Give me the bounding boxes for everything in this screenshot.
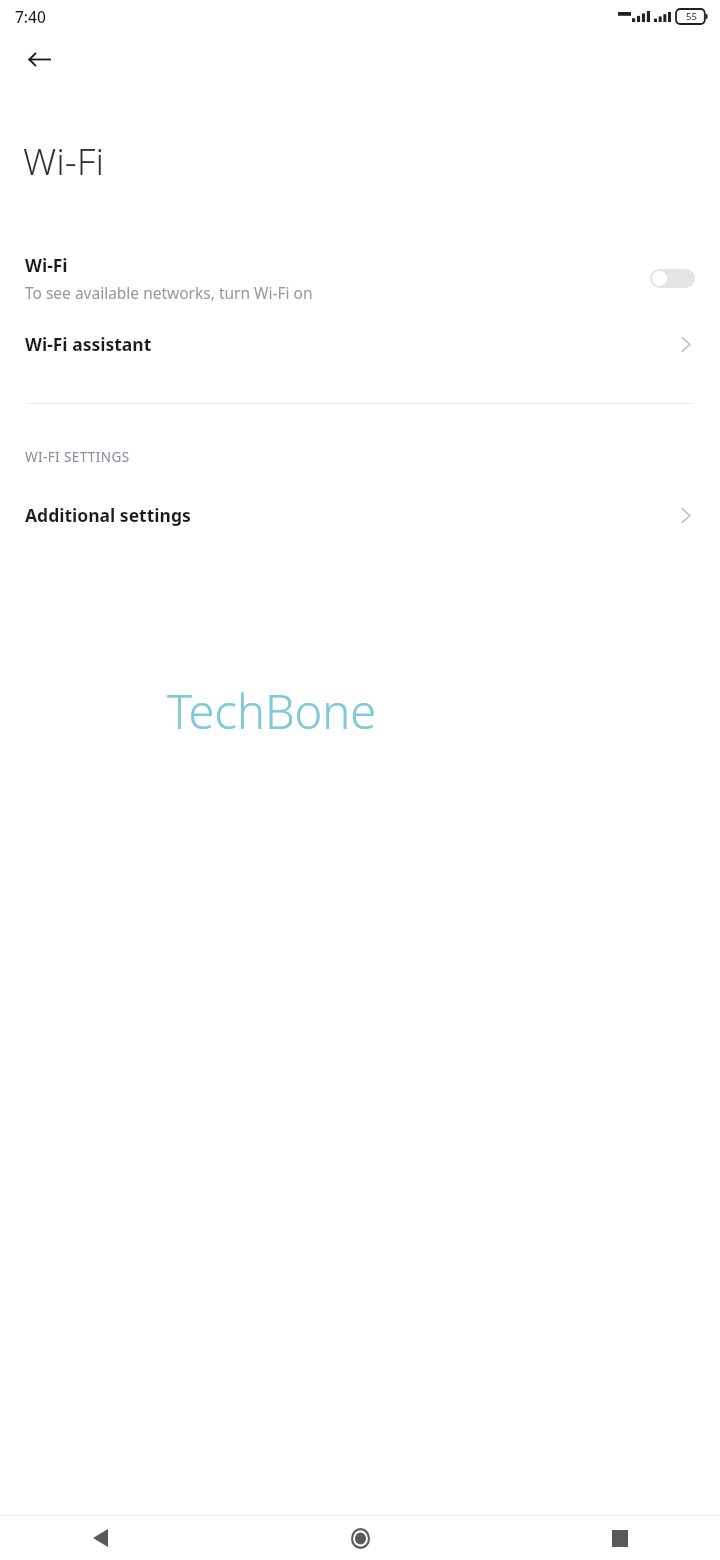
staticText: TechBone: [167, 679, 377, 743]
staticText: To see available networks, turn Wi-Fi on: [25, 282, 313, 303]
button[interactable]: Back: [18, 38, 60, 80]
staticText: Additional settings: [25, 503, 681, 527]
staticText: Wi-Fi: [25, 253, 68, 277]
staticText: Wi-Fi: [23, 135, 105, 185]
staticText: 55: [686, 10, 697, 23]
button[interactable]: Back: [76, 1516, 124, 1560]
staticText: Wi-Fi assistant: [25, 332, 681, 356]
button[interactable]: Wi-Fi assistant: [0, 315, 720, 373]
button[interactable]: Wi-Fi: [0, 241, 720, 315]
button[interactable]: Home: [336, 1516, 384, 1560]
staticText: WI-FI SETTINGS: [25, 448, 130, 466]
button[interactable]: Recent apps: [596, 1516, 644, 1560]
staticText: 7:40: [15, 6, 46, 27]
button[interactable]: Additional settings: [0, 486, 720, 544]
